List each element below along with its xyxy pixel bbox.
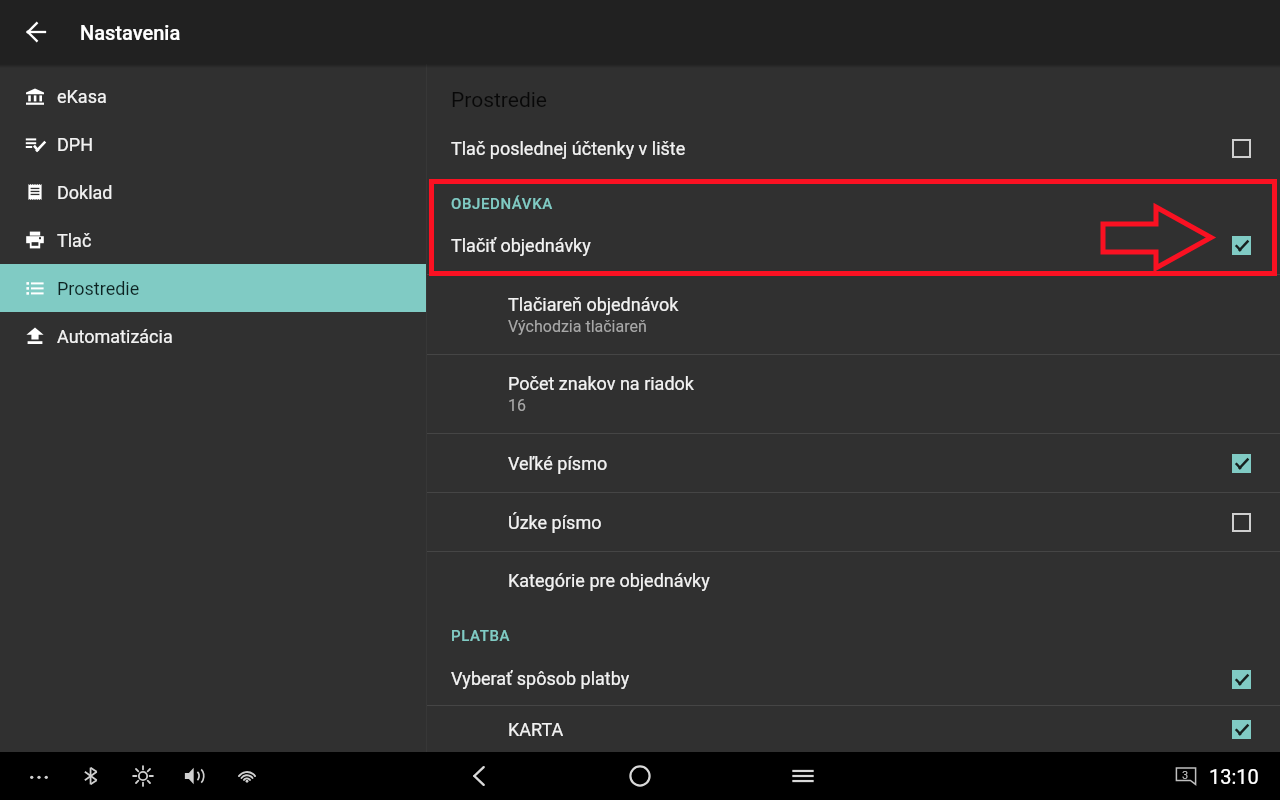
staticText: Počet znakov na riadok bbox=[508, 373, 694, 394]
button[interactable]: Počet znakov na riadok bbox=[427, 355, 1280, 433]
staticText: Prostredie bbox=[451, 88, 547, 113]
button[interactable]: Kategórie pre objednávky bbox=[427, 552, 1280, 608]
button[interactable]: Back bbox=[399, 752, 559, 800]
staticText: Prostredie bbox=[57, 278, 140, 299]
button[interactable]: Prostredie bbox=[0, 264, 426, 312]
staticText: Kategórie pre objednávky bbox=[508, 570, 710, 591]
button[interactable]: eKasa bbox=[0, 72, 426, 120]
button[interactable]: KARTA bbox=[427, 706, 1280, 752]
staticText: Úzke písmo bbox=[508, 512, 602, 533]
button[interactable]: DPH bbox=[0, 120, 426, 168]
button[interactable]: Home bbox=[560, 752, 720, 800]
button[interactable]: Doklad bbox=[0, 168, 426, 216]
button[interactable]: Veľké písmo bbox=[427, 434, 1280, 492]
staticText: DPH bbox=[57, 134, 94, 155]
button[interactable]: Tlačiareň objednávok bbox=[427, 275, 1280, 354]
staticText: OBJEDNÁVKA bbox=[451, 195, 553, 213]
button[interactable]: Unchecked bbox=[1218, 499, 1264, 545]
button[interactable]: Notifications bbox=[1166, 756, 1206, 796]
staticText: PLATBA bbox=[451, 627, 511, 645]
button[interactable]: Checked bbox=[1218, 656, 1264, 702]
button[interactable]: More options bbox=[17, 754, 61, 798]
button[interactable]: Volume bbox=[173, 754, 217, 798]
staticText: Doklad bbox=[57, 182, 113, 203]
button[interactable]: Vyberať spôsob platby bbox=[427, 652, 1280, 705]
staticText: eKasa bbox=[57, 86, 107, 107]
staticText: Automatizácia bbox=[57, 326, 173, 347]
staticText: 16 bbox=[508, 396, 526, 415]
staticText: Nastavenia bbox=[80, 21, 181, 44]
staticText: Tlačiareň objednávok bbox=[508, 294, 679, 315]
button[interactable]: Recent apps bbox=[723, 752, 883, 800]
button[interactable]: Checked bbox=[1218, 222, 1264, 268]
staticText: Tlačiť objednávky bbox=[451, 235, 591, 256]
button[interactable]: Tlač bbox=[0, 216, 426, 264]
staticText: Vyberať spôsob platby bbox=[451, 668, 630, 689]
button[interactable]: Checked bbox=[1218, 706, 1264, 752]
button[interactable]: Brightness bbox=[121, 754, 165, 798]
button[interactable]: Úzke písmo bbox=[427, 493, 1280, 551]
button[interactable]: Bluetooth bbox=[69, 754, 113, 798]
staticText: Veľké písmo bbox=[508, 453, 608, 474]
staticText: Tlač bbox=[57, 230, 92, 251]
button[interactable]: Tlač poslednej účtenky v lište bbox=[427, 120, 1280, 176]
staticText: 13:10 bbox=[1209, 765, 1259, 788]
staticText: Východzia tlačiareň bbox=[508, 317, 647, 336]
staticText: 3 bbox=[1182, 769, 1189, 782]
button[interactable]: Unchecked bbox=[1218, 125, 1264, 171]
staticText: KARTA bbox=[508, 719, 564, 740]
button[interactable]: Checked bbox=[1218, 440, 1264, 486]
button[interactable]: Tlačiť objednávky bbox=[427, 220, 1280, 270]
button[interactable]: Wi-Fi bbox=[225, 754, 269, 798]
button[interactable]: Automatizácia bbox=[0, 312, 426, 360]
button[interactable]: Back bbox=[0, 0, 80, 64]
staticText: Tlač poslednej účtenky v lište bbox=[451, 138, 686, 159]
